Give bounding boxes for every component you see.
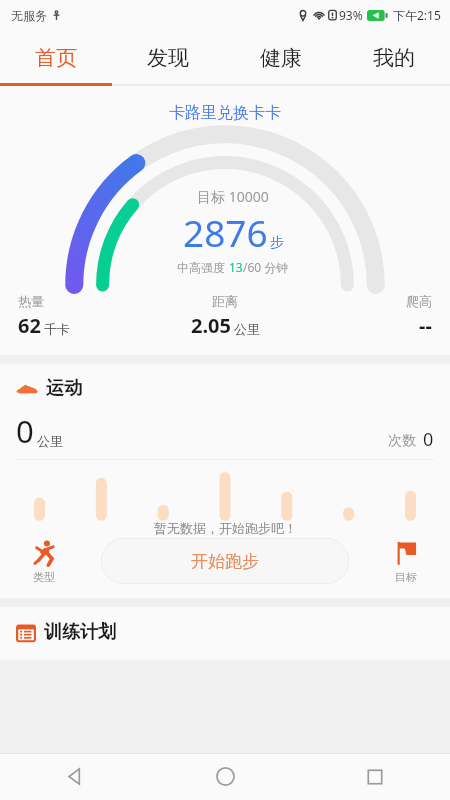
staticText: 0 <box>16 410 34 452</box>
staticText: 发现 <box>147 45 189 71</box>
staticText: 62 <box>18 312 41 339</box>
button[interactable]: 次数 <box>388 427 434 452</box>
button[interactable]: 距离 <box>156 293 294 339</box>
staticText: 下午2:15 <box>393 7 441 23</box>
staticText: 公里 <box>234 321 260 337</box>
button[interactable]: 0 <box>16 410 63 452</box>
button[interactable]: 卡路里兑换卡卡 <box>169 103 281 123</box>
staticText: 首页 <box>35 45 77 71</box>
staticText: 中高强度 <box>177 259 229 275</box>
staticText: 我的 <box>373 45 415 71</box>
staticText: 2.05 <box>191 312 231 339</box>
button[interactable]: 训练计划 <box>16 621 434 644</box>
button[interactable]: 首页 <box>0 30 112 86</box>
staticText: -- <box>419 312 432 339</box>
staticText: 0 <box>423 427 434 452</box>
button[interactable]: 运动类型 <box>14 539 74 584</box>
staticText: 健康 <box>260 45 302 71</box>
staticText: 开始跑步 <box>191 551 259 572</box>
staticText: 目标 <box>395 570 417 584</box>
staticText: 千卡 <box>44 321 70 337</box>
button[interactable]: Back <box>0 753 150 800</box>
staticText: 步 <box>270 234 284 252</box>
staticText: 类型 <box>33 570 55 584</box>
staticText: 训练计划 <box>44 621 116 644</box>
staticText: 暂无数据，开始跑步吧！ <box>154 520 297 536</box>
staticText: 热量 <box>18 293 44 309</box>
staticText: 目标 10000 <box>197 187 269 206</box>
button[interactable]: 运动 <box>16 377 434 400</box>
staticText: 公里 <box>37 433 63 449</box>
staticText: 运动 <box>46 377 82 400</box>
staticText: 2876 <box>183 207 268 257</box>
button[interactable]: 爬高 <box>294 293 432 339</box>
button[interactable]: 开始跑步 <box>101 538 349 584</box>
staticText: 93% <box>339 7 363 23</box>
button[interactable]: 健康 <box>224 30 337 86</box>
button[interactable]: Home <box>150 753 300 800</box>
button[interactable]: 我的 <box>337 30 450 86</box>
button[interactable]: 运动目标 <box>376 539 436 584</box>
staticText: 13 <box>229 259 243 275</box>
staticText: 爬高 <box>406 293 432 309</box>
staticText: /60 分钟 <box>243 259 289 275</box>
button[interactable]: 热量 <box>18 293 156 339</box>
staticText: 次数 <box>388 432 416 450</box>
staticText: 距离 <box>212 293 238 309</box>
staticText: 无服务 <box>11 8 47 23</box>
button[interactable]: Recents <box>300 753 450 800</box>
button[interactable]: 发现 <box>112 30 224 86</box>
